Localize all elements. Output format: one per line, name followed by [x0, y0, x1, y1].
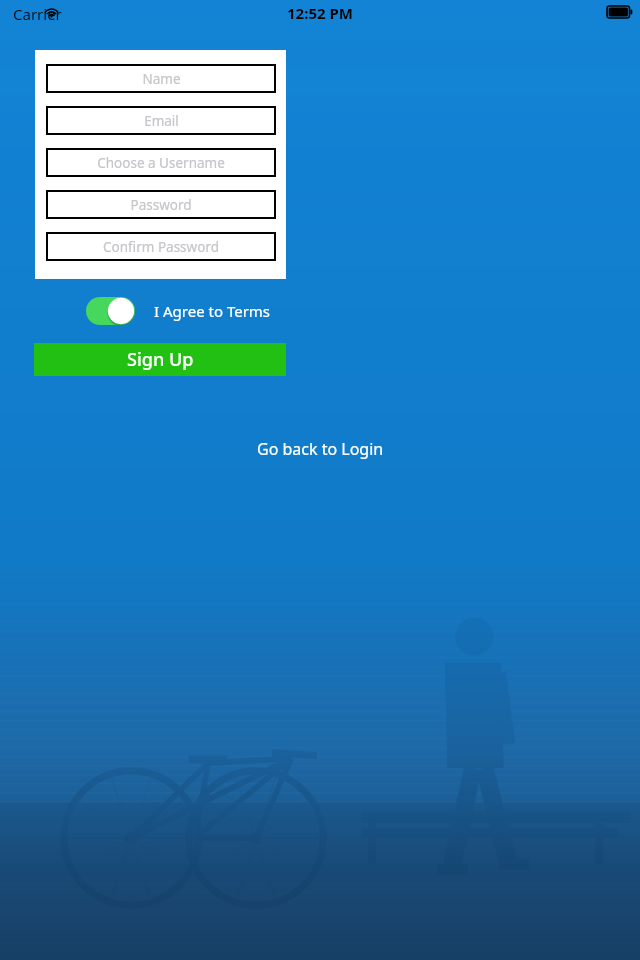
button[interactable]: Sign Up [34, 343, 286, 376]
staticText: Name [142, 70, 181, 88]
button[interactable]: Confirm Password [46, 232, 276, 261]
staticText: 12:52 PM [287, 3, 353, 23]
button[interactable]: Name [46, 64, 276, 93]
staticText: Email [144, 112, 179, 130]
staticText: Password [130, 196, 192, 214]
button[interactable]: Choose a Username [46, 148, 276, 177]
staticText: Confirm Password [103, 238, 219, 256]
button[interactable]: Email [46, 106, 276, 135]
staticText: Go back to Login [257, 438, 384, 460]
staticText: Choose a Username [97, 154, 225, 172]
staticText: I Agree to Terms [154, 301, 271, 321]
staticText: Carrier [13, 4, 62, 24]
button[interactable]: Go back to Login [257, 438, 384, 460]
button[interactable]: Agree to Terms toggle, on [86, 297, 135, 325]
staticText: Sign Up [127, 347, 194, 372]
button[interactable]: Password [46, 190, 276, 219]
